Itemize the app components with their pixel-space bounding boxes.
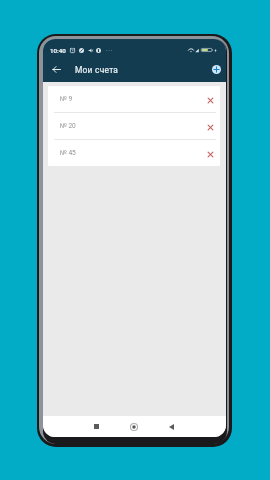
staticText: 10:40 [50, 47, 66, 54]
button[interactable]: № 45 [48, 140, 220, 166]
button[interactable]: Back [160, 416, 182, 437]
button[interactable]: № 9 [48, 86, 220, 112]
button[interactable]: Delete account [201, 86, 220, 112]
button[interactable]: Add account [208, 61, 224, 79]
staticText: № 45 [60, 149, 76, 157]
button[interactable]: Recent apps [85, 416, 107, 437]
button[interactable]: Home [123, 416, 145, 437]
button[interactable]: Delete account [201, 140, 220, 166]
staticText: № 20 [60, 122, 76, 130]
button[interactable]: Back [43, 59, 69, 80]
staticText: Мои счета [75, 65, 119, 75]
button[interactable]: № 20 [48, 113, 220, 139]
button[interactable]: Delete account [201, 113, 220, 139]
staticText: № 9 [60, 95, 73, 103]
